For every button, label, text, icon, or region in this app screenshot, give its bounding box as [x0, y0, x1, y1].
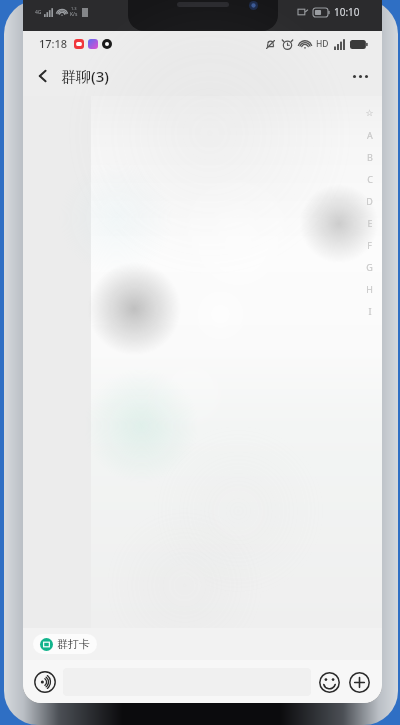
staticText: 10:10 [334, 5, 360, 19]
staticText: I [368, 305, 372, 317]
button[interactable]: ☆ [363, 102, 376, 124]
staticText: 17:18 [39, 36, 68, 51]
staticText: F [367, 239, 372, 251]
staticText: 群打卡 [57, 637, 90, 651]
button[interactable]: Back [23, 60, 117, 92]
staticText: A [367, 129, 373, 141]
button[interactable]: More functions [344, 667, 374, 697]
staticText: B [367, 151, 373, 163]
staticText: HD [316, 38, 329, 50]
staticText: 群聊(3) [61, 66, 109, 86]
button[interactable]: More options [339, 65, 382, 88]
staticText: C [367, 173, 373, 185]
staticText: K/s [70, 11, 78, 18]
staticText: G [366, 261, 373, 273]
button[interactable]: B [363, 146, 376, 168]
button[interactable]: G [363, 256, 376, 278]
button[interactable]: Emoji [314, 667, 344, 697]
staticText: D [366, 195, 373, 207]
button[interactable]: D [363, 190, 376, 212]
staticText: E [367, 217, 373, 229]
staticText: 4G [35, 9, 42, 16]
button[interactable]: I [363, 300, 376, 322]
button[interactable]: Voice message [30, 667, 60, 697]
button[interactable]: C [363, 168, 376, 190]
staticText: ☆ [365, 108, 374, 118]
staticText: H [366, 283, 373, 295]
button[interactable]: E [363, 212, 376, 234]
button[interactable]: H [363, 278, 376, 300]
button[interactable]: 群打卡 [33, 634, 97, 654]
button[interactable]: F [363, 234, 376, 256]
staticText: 1.3 [71, 6, 77, 11]
button[interactable]: A [363, 124, 376, 146]
